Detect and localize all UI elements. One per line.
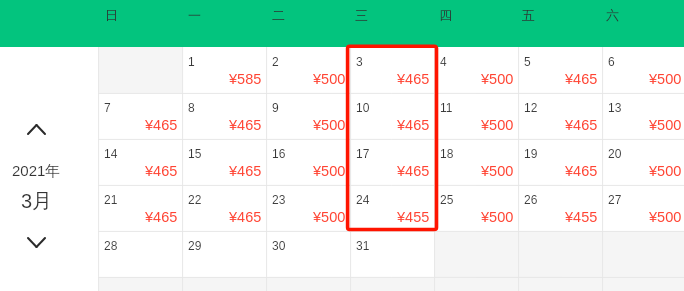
staticText: 23 [272, 193, 286, 206]
staticText: 1 [188, 55, 195, 68]
button [518, 277, 602, 291]
button[interactable]: 27 [602, 185, 684, 231]
button[interactable]: 五 [486, 0, 570, 47]
staticText: 21 [104, 193, 118, 206]
button[interactable]: 日 [69, 0, 153, 47]
staticText: 15 [188, 147, 202, 160]
staticText: 日 [105, 7, 118, 23]
button[interactable]: 13 [602, 93, 684, 139]
staticText: 19 [524, 147, 538, 160]
button [350, 277, 434, 291]
staticText: ¥465 [145, 163, 178, 179]
button[interactable]: 3月 [1, 189, 73, 214]
staticText: ¥500 [649, 209, 682, 225]
staticText: 24 [356, 193, 370, 206]
staticText: 28 [104, 239, 118, 252]
staticText: ¥500 [649, 163, 682, 179]
staticText: ¥465 [229, 209, 262, 225]
staticText: 四 [439, 7, 452, 23]
staticText: ¥585 [229, 71, 262, 87]
button[interactable]: 7 [98, 93, 182, 139]
button[interactable]: 下一个月 [14, 231, 58, 253]
staticText: 11 [440, 101, 453, 114]
button[interactable]: 六 [570, 0, 654, 47]
button[interactable]: 5 [518, 47, 602, 93]
button[interactable]: 19 [518, 139, 602, 185]
staticText: ¥500 [313, 163, 346, 179]
staticText: ¥500 [313, 117, 346, 133]
button[interactable]: 25 [434, 185, 518, 231]
button[interactable]: 8 [182, 93, 266, 139]
button[interactable]: 20 [602, 139, 684, 185]
button[interactable]: 1 [182, 47, 266, 93]
staticText: ¥455 [397, 209, 430, 225]
staticText: 六 [606, 7, 619, 23]
button[interactable]: 23 [266, 185, 350, 231]
staticText: 三 [355, 7, 368, 23]
staticText: 3月 [21, 189, 53, 214]
button[interactable]: 2021年 [0, 162, 72, 181]
staticText: ¥465 [565, 163, 598, 179]
button[interactable]: 三 [319, 0, 403, 47]
button[interactable]: 11 [434, 93, 518, 139]
button[interactable]: 24 [350, 185, 434, 231]
staticText: ¥500 [313, 209, 346, 225]
staticText: 一 [188, 7, 201, 23]
staticText: 25 [440, 193, 454, 206]
staticText: 12 [524, 101, 538, 114]
button[interactable]: 26 [518, 185, 602, 231]
staticText: ¥465 [145, 209, 178, 225]
staticText: ¥465 [565, 71, 598, 87]
button[interactable]: 3 [350, 47, 434, 93]
staticText: ¥500 [649, 71, 682, 87]
button[interactable]: 一 [152, 0, 236, 47]
button [266, 277, 350, 291]
staticText: ¥500 [481, 71, 514, 87]
staticText: 10 [356, 101, 370, 114]
staticText: 14 [104, 147, 118, 160]
staticText: ¥500 [313, 71, 346, 87]
button[interactable]: 15 [182, 139, 266, 185]
staticText: ¥465 [565, 117, 598, 133]
button[interactable]: 12 [518, 93, 602, 139]
staticText: 13 [608, 101, 622, 114]
button[interactable]: 9 [266, 93, 350, 139]
staticText: 2021年 [12, 162, 61, 181]
button[interactable]: 28 [98, 231, 182, 277]
staticText: 7 [104, 101, 111, 114]
button[interactable]: 29 [182, 231, 266, 277]
button[interactable]: 14 [98, 139, 182, 185]
button [182, 277, 266, 291]
staticText: 9 [272, 101, 279, 114]
staticText: 16 [272, 147, 286, 160]
staticText: 2 [272, 55, 279, 68]
staticText: ¥500 [649, 117, 682, 133]
button[interactable]: 四 [403, 0, 487, 47]
staticText: 17 [356, 147, 370, 160]
button[interactable]: 17 [350, 139, 434, 185]
button[interactable]: 16 [266, 139, 350, 185]
button[interactable]: 2 [266, 47, 350, 93]
staticText: ¥455 [565, 209, 598, 225]
button[interactable]: 4 [434, 47, 518, 93]
button [602, 277, 684, 291]
staticText: ¥465 [229, 117, 262, 133]
button[interactable]: 22 [182, 185, 266, 231]
staticText: 8 [188, 101, 195, 114]
staticText: ¥500 [481, 163, 514, 179]
button[interactable]: 18 [434, 139, 518, 185]
button[interactable]: 31 [350, 231, 434, 277]
button[interactable]: 上一个月 [14, 118, 58, 140]
button[interactable]: 21 [98, 185, 182, 231]
button[interactable]: 10 [350, 93, 434, 139]
button[interactable]: 二 [236, 0, 320, 47]
staticText: 3 [356, 55, 363, 68]
staticText: ¥500 [481, 209, 514, 225]
staticText: 29 [188, 239, 202, 252]
button[interactable]: 6 [602, 47, 684, 93]
button[interactable]: 30 [266, 231, 350, 277]
